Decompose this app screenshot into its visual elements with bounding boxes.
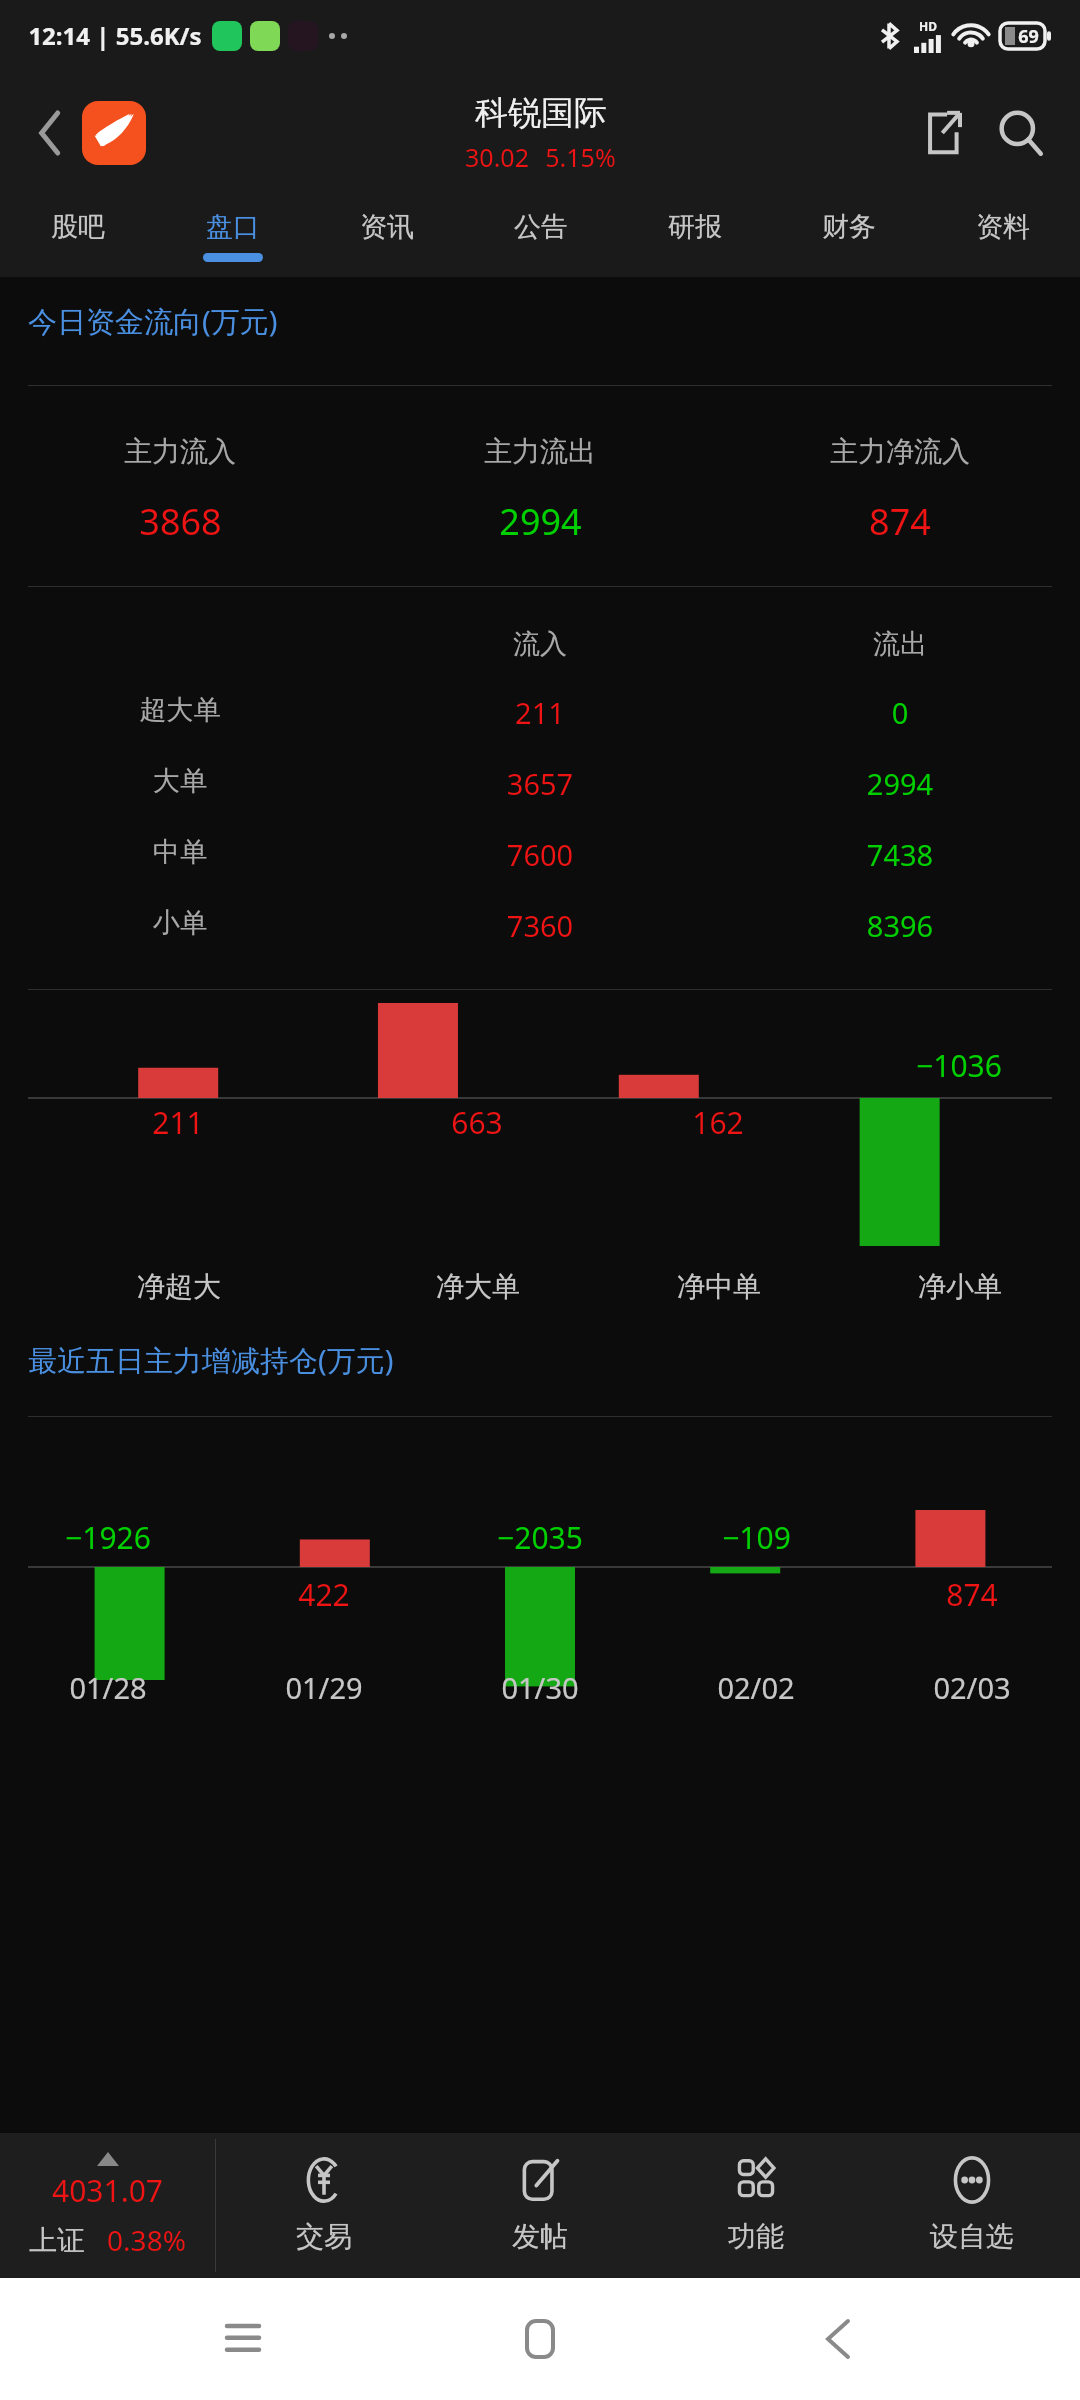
staticText: 小单 xyxy=(0,906,360,940)
staticText: 公告 xyxy=(514,210,568,244)
staticText: 02/02 xyxy=(717,1668,795,1707)
staticText: 3868 xyxy=(139,497,222,546)
button[interactable]: 发帖 xyxy=(432,2133,648,2278)
staticText: −1036 xyxy=(916,1045,1002,1086)
button[interactable]: 资料 xyxy=(926,195,1080,277)
staticText: −1926 xyxy=(65,1517,151,1558)
button[interactable]: App logo xyxy=(82,101,146,165)
button[interactable]: Recents xyxy=(188,2284,298,2394)
staticText: 中单 xyxy=(0,835,360,869)
button[interactable]: 4031.07 xyxy=(0,2133,215,2278)
staticText: 01/29 xyxy=(285,1668,363,1707)
staticText: 研报 xyxy=(668,210,722,244)
staticText: −2035 xyxy=(497,1517,583,1558)
staticText: 211 xyxy=(152,1102,204,1143)
staticText: 交易 xyxy=(296,2219,352,2254)
button[interactable]: 资讯 xyxy=(310,195,464,277)
staticText: 净小单 xyxy=(918,1269,1002,1304)
staticText: 2994 xyxy=(499,497,582,546)
button[interactable]: Back xyxy=(22,105,78,161)
staticText: 资料 xyxy=(976,210,1030,244)
staticText: 大单 xyxy=(0,764,360,798)
staticText: 财务 xyxy=(822,210,876,244)
button[interactable]: 财务 xyxy=(772,195,926,277)
staticText: 162 xyxy=(692,1102,744,1143)
button[interactable]: Share xyxy=(910,100,976,166)
staticText: 主力流入 xyxy=(124,434,236,469)
button[interactable]: 股吧 xyxy=(0,195,155,277)
button[interactable]: Home xyxy=(485,2284,595,2394)
staticText: 12:14 | 55.6K/s xyxy=(28,19,202,52)
staticText: 30.02 xyxy=(465,140,529,174)
staticText: 主力净流入 xyxy=(830,434,970,469)
staticText: 211 xyxy=(360,693,720,732)
button[interactable]: 功能 xyxy=(648,2133,864,2278)
staticText: 7438 xyxy=(720,835,1080,874)
staticText: 2994 xyxy=(720,764,1080,803)
staticText: 422 xyxy=(298,1574,350,1615)
staticText: 盘口 xyxy=(206,210,260,244)
staticText: 最近五日主力增减持仓(万元) xyxy=(28,1340,394,1380)
staticText: 874 xyxy=(946,1574,998,1615)
staticText: 净大单 xyxy=(436,1269,520,1304)
button[interactable]: Back xyxy=(783,2284,893,2394)
staticText: 01/28 xyxy=(69,1668,147,1707)
staticText: 0.38% xyxy=(107,2221,186,2259)
staticText: 资讯 xyxy=(360,210,414,244)
button[interactable]: 公告 xyxy=(464,195,618,277)
staticText: 663 xyxy=(451,1102,503,1143)
staticText: 流入 xyxy=(360,627,720,661)
button[interactable]: Search xyxy=(986,98,1056,168)
staticText: 科锐国际 xyxy=(475,92,607,134)
staticText: 主力流出 xyxy=(484,434,596,469)
staticText: 净中单 xyxy=(677,1269,761,1304)
button[interactable]: 盘口 xyxy=(155,195,310,277)
staticText: 874 xyxy=(869,497,931,546)
staticText: 超大单 xyxy=(0,693,360,727)
staticText: −109 xyxy=(722,1517,791,1558)
staticText: 净超大 xyxy=(137,1269,221,1304)
staticText: HD xyxy=(919,18,937,34)
staticText: 7600 xyxy=(360,835,720,874)
staticText: 7360 xyxy=(360,906,720,945)
staticText: 01/30 xyxy=(501,1668,579,1707)
staticText: 4031.07 xyxy=(52,2170,163,2211)
button[interactable]: 设自选 xyxy=(864,2133,1080,2278)
staticText: 0 xyxy=(720,693,1080,732)
staticText: 上证 xyxy=(29,2223,85,2258)
staticText: 69 xyxy=(1018,24,1039,49)
staticText: 今日资金流向(万元) xyxy=(28,301,278,341)
staticText: 发帖 xyxy=(512,2219,568,2254)
button[interactable]: 交易 xyxy=(216,2133,432,2278)
staticText: 设自选 xyxy=(930,2219,1014,2254)
staticText: 功能 xyxy=(728,2219,784,2254)
staticText: 8396 xyxy=(720,906,1080,945)
staticText: 流出 xyxy=(720,627,1080,661)
staticText: 5.15% xyxy=(545,140,616,174)
staticText: 3657 xyxy=(360,764,720,803)
button[interactable]: 研报 xyxy=(618,195,772,277)
staticText: 股吧 xyxy=(51,210,105,244)
staticText: 02/03 xyxy=(933,1668,1011,1707)
